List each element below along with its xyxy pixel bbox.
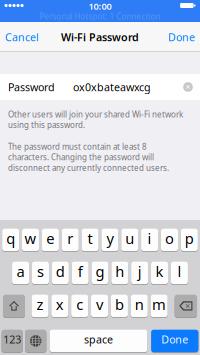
staticText: Done [161, 332, 188, 346]
button[interactable]: r [62, 228, 79, 252]
button[interactable]: 123 [2, 329, 23, 353]
button[interactable]: Delete [175, 294, 197, 318]
staticText: d [56, 262, 65, 281]
button[interactable]: d [52, 261, 69, 285]
staticText: x [56, 295, 64, 314]
staticText: v [96, 295, 103, 314]
button[interactable]: Done [160, 22, 200, 52]
button[interactable]: Done [151, 329, 198, 353]
button[interactable]: p [181, 228, 198, 252]
staticText: space [84, 332, 113, 346]
button[interactable]: x [51, 294, 68, 318]
button[interactable]: v [91, 294, 108, 318]
button[interactable]: u [121, 228, 138, 252]
button[interactable]: k [151, 261, 168, 285]
button[interactable]: o [161, 228, 178, 252]
button[interactable]: q [2, 228, 19, 252]
staticText: Cancel [5, 30, 39, 44]
staticText: t [88, 229, 93, 248]
button[interactable]: Shift [3, 294, 25, 318]
button[interactable]: j [131, 261, 148, 285]
staticText: a [17, 262, 25, 281]
staticText: Password [8, 80, 55, 94]
staticText: q [6, 229, 15, 248]
button[interactable]: c [71, 294, 88, 318]
staticText: k [155, 262, 163, 281]
button[interactable]: w [22, 228, 39, 252]
staticText: s [37, 262, 44, 281]
staticText: c [76, 295, 83, 314]
button[interactable]: t [81, 228, 99, 252]
staticText: Done [168, 30, 195, 44]
button[interactable]: space [50, 329, 147, 353]
button[interactable]: h [111, 261, 128, 285]
staticText: g [95, 262, 104, 281]
staticText: o [165, 229, 174, 248]
staticText: h [115, 262, 124, 281]
staticText: b [115, 295, 124, 314]
staticText: w [24, 229, 36, 248]
staticText: Personal Hotspot: 1 Connection [39, 11, 160, 22]
button[interactable]: f [72, 261, 89, 285]
staticText: u [125, 229, 134, 248]
button[interactable]: s [32, 261, 49, 285]
staticText: r [67, 229, 73, 248]
button[interactable]: y [101, 228, 118, 252]
button[interactable]: g [91, 261, 109, 285]
staticText: j [138, 262, 142, 281]
staticText: p [185, 229, 194, 248]
staticText: ox0xbateawxcg [73, 80, 151, 94]
staticText: Wi-Fi Password [61, 30, 139, 44]
staticText: z [36, 295, 43, 314]
button[interactable]: b [111, 294, 128, 318]
button[interactable]: Cancel [0, 22, 47, 52]
staticText: The password must contain at least 8 cha… [8, 141, 169, 173]
button[interactable]: z [31, 294, 49, 318]
staticText: e [46, 229, 54, 248]
button[interactable]: m [151, 294, 168, 318]
staticText: Other users will join your shared Wi-Fi … [8, 109, 183, 130]
button[interactable]: a [12, 261, 29, 285]
button[interactable]: Clear text [177, 74, 199, 100]
staticText: m [152, 295, 166, 314]
staticText: 10:00 [88, 0, 111, 12]
button[interactable]: e [42, 228, 59, 252]
staticText: y [106, 229, 113, 248]
staticText: i [148, 229, 152, 248]
button[interactable]: i [141, 228, 158, 252]
staticText: 123 [3, 332, 21, 346]
staticText: f [78, 262, 83, 281]
staticText: l [177, 262, 181, 281]
staticText: n [135, 295, 144, 314]
button[interactable]: Switch keyboard [25, 329, 46, 353]
button[interactable]: n [131, 294, 148, 318]
button[interactable]: l [171, 261, 188, 285]
